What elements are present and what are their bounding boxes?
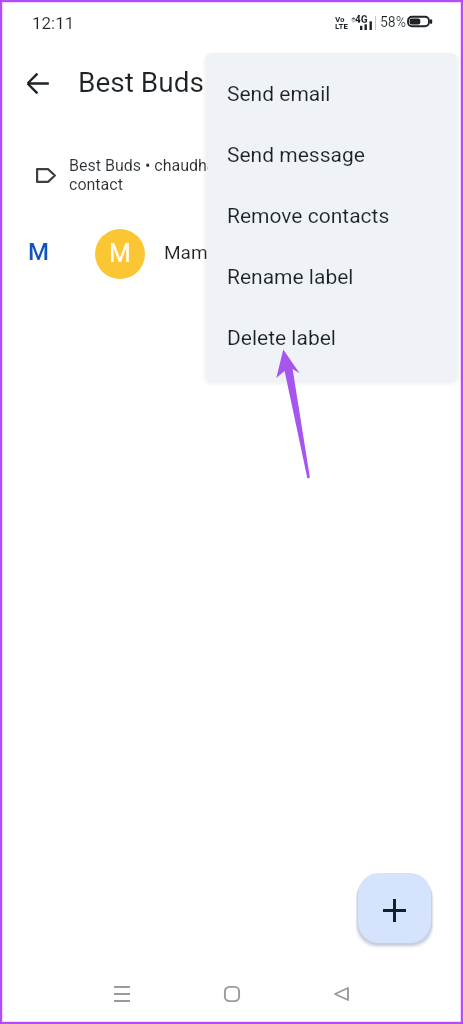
button[interactable]: Home [208,970,256,1018]
staticText: Send message [227,143,365,168]
button[interactable]: Best Buds • chaudharyananya02@gmail.com [0,148,463,202]
staticText: Remove contacts [227,204,390,229]
button[interactable]: Delete label [208,308,456,369]
button[interactable]: Remove contacts [208,186,456,247]
button[interactable]: Navigate up [14,59,62,107]
button[interactable]: Recent apps [98,970,146,1018]
staticText: Mamma [164,241,235,263]
staticText: 4G [355,14,368,26]
staticText: Send email [227,82,331,107]
button[interactable]: M [0,222,463,286]
button[interactable]: Send email [208,64,456,125]
staticText: M [109,239,131,268]
staticText: contact [69,175,123,194]
staticText: Best Buds • chaudharyananya02@gmail.com [69,156,463,175]
staticText: Best Buds [78,66,204,99]
staticText: M [28,238,49,266]
staticText: Vo [335,15,345,24]
staticText: 12:11 [32,13,75,33]
button[interactable]: Send message [208,125,456,186]
staticText: LTE [335,22,349,31]
staticText: Rename label [227,265,354,290]
staticText: Delete label [227,326,336,351]
staticText: 58% [380,14,406,30]
button[interactable]: Back [317,970,365,1018]
button[interactable]: Rename label [208,247,456,308]
button[interactable]: Add contact [358,873,431,943]
